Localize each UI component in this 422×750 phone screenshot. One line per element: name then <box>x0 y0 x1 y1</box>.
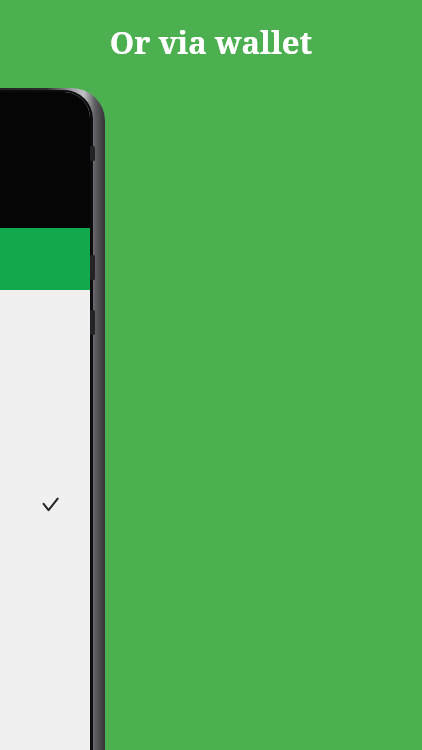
staticText: Or via wallet <box>0 21 422 63</box>
other: Selected <box>43 498 58 511</box>
